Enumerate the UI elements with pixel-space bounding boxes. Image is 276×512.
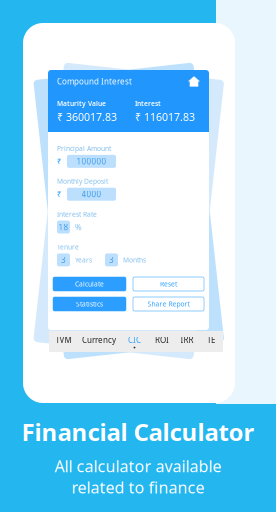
staticText: Currency [82,334,116,345]
staticText: TVM [55,334,71,345]
staticText: ₹ 360017.83 [57,110,117,124]
staticText: CIC [128,334,141,345]
button[interactable]: TVM [49,331,78,352]
staticText: Months [123,255,146,264]
staticText: Monthly Deposit [57,177,108,186]
staticText: ROI [155,334,169,345]
staticText: Interest Rate [57,210,97,219]
staticText: Principal Amount [57,144,111,153]
staticText: related to finance [71,477,204,498]
button[interactable]: Share Report [133,297,204,311]
staticText: 4000 [81,189,101,199]
staticText: Statistics [76,300,103,308]
staticText: Calculate [75,280,104,288]
button[interactable]: Home [188,76,200,87]
staticText: 3 [109,255,114,265]
staticText: % [75,222,82,232]
staticText: Share Report [147,300,189,308]
staticText: Tenure [57,243,79,251]
button[interactable]: Statistics [53,297,126,311]
staticText: Financial Calculator [21,416,254,447]
button[interactable]: TE [199,331,223,352]
staticText: 3 [61,255,66,265]
button[interactable]: Currency [78,331,120,352]
staticText: TE [207,334,215,345]
button[interactable]: CIC [120,331,149,352]
button[interactable]: Calculate [53,277,126,291]
staticText: All calculator available [54,455,221,477]
staticText: Reset [160,280,177,288]
staticText: Interest [135,99,161,108]
staticText: ₹ [57,156,62,167]
staticText: Years [75,255,92,264]
button[interactable]: ROI [149,331,175,352]
staticText: 100000 [76,156,106,167]
staticText: IRR [180,334,193,345]
staticText: ₹ [57,189,62,199]
button[interactable]: Reset [133,277,204,291]
staticText: Compound Interest [57,76,132,87]
staticText: Maturity Value [57,99,106,108]
button[interactable]: IRR [175,331,199,352]
staticText: ₹ 116017.83 [135,110,195,124]
staticText: 18 [58,222,68,232]
